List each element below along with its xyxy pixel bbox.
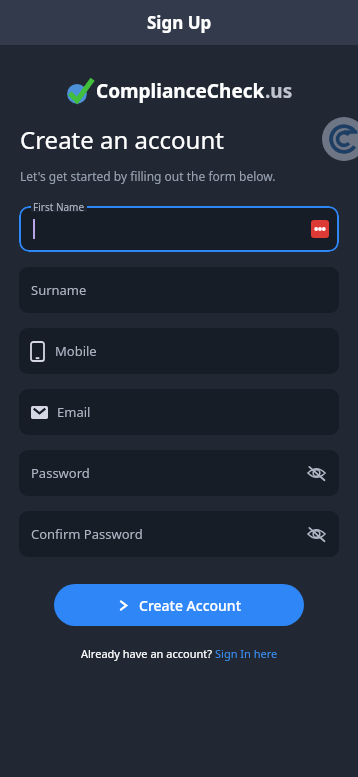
other: ComplianceCheck badge [322,117,358,161]
staticText: Sign Up [147,11,212,34]
button[interactable] [19,206,339,252]
staticText: Password [31,464,305,482]
button[interactable]: Show password [305,523,327,545]
staticText: Email [57,403,327,421]
button[interactable]: Surname [19,267,339,313]
staticText: Create an account [20,123,224,156]
staticText: ComplianceCheck [96,78,265,104]
button[interactable]: More options [311,220,329,238]
button[interactable]: Show password [305,462,327,484]
button[interactable]: Create Account [54,584,304,626]
staticText: Surname [31,281,327,299]
button[interactable]: Password [19,450,339,496]
button[interactable]: Sign In here [215,646,278,661]
staticText: .us [265,78,293,104]
staticText: Already have an account? [81,646,215,661]
button[interactable]: Confirm Password [19,511,339,557]
staticText: First Name [33,200,85,212]
staticText: Confirm Password [31,525,305,543]
staticText: Create Account [139,596,242,615]
staticText: Mobile [55,342,327,360]
staticText: Let's get started by filling out the for… [20,168,276,184]
button[interactable]: Email [19,389,339,435]
button[interactable]: Mobile [19,328,339,374]
staticText: Sign In here [215,646,278,661]
